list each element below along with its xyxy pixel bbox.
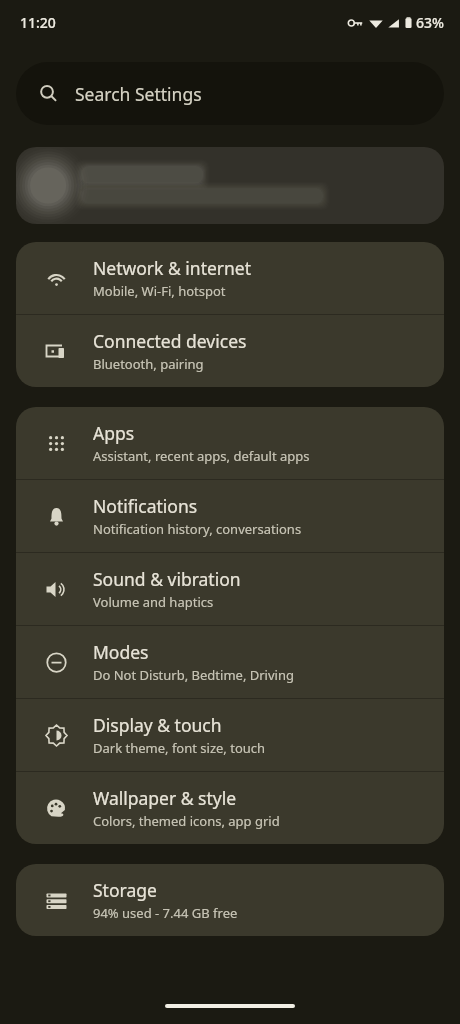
button[interactable]: Display & touch <box>16 699 444 771</box>
staticText: Apps <box>93 421 135 445</box>
button[interactable]: Connected devices <box>16 315 444 387</box>
staticText: Wallpaper & style <box>93 786 237 810</box>
button[interactable]: Search Settings <box>16 62 444 125</box>
staticText: Sound & vibration <box>93 567 241 591</box>
staticText: 63% <box>416 13 444 32</box>
staticText: Notifications <box>93 494 198 518</box>
staticText: 11:20 <box>20 13 56 32</box>
staticText: Storage <box>93 878 157 902</box>
staticText: 94% used - 7.44 GB free <box>93 904 238 922</box>
staticText: Dark theme, font size, touch <box>93 739 266 757</box>
staticText: Assistant, recent apps, default apps <box>93 447 310 465</box>
button[interactable]: Modes <box>16 626 444 698</box>
button[interactable]: Account <box>16 147 444 224</box>
staticText: Display & touch <box>93 713 222 737</box>
button[interactable]: Apps <box>16 407 444 479</box>
staticText: Modes <box>93 640 149 664</box>
staticText: Notification history, conversations <box>93 520 302 538</box>
staticText: Bluetooth, pairing <box>93 355 204 373</box>
staticText: Do Not Disturb, Bedtime, Driving <box>93 666 294 684</box>
staticText: Connected devices <box>93 329 247 353</box>
button[interactable]: Sound & vibration <box>16 553 444 625</box>
button[interactable]: Storage <box>16 864 444 936</box>
staticText: Search Settings <box>75 82 202 106</box>
button[interactable]: Wallpaper & style <box>16 772 444 844</box>
staticText: Network & internet <box>93 256 252 280</box>
staticText: Colors, themed icons, app grid <box>93 812 280 830</box>
staticText: Volume and haptics <box>93 593 214 611</box>
button[interactable]: Notifications <box>16 480 444 552</box>
button[interactable]: Network & internet <box>16 242 444 314</box>
staticText: Mobile, Wi-Fi, hotspot <box>93 282 226 300</box>
